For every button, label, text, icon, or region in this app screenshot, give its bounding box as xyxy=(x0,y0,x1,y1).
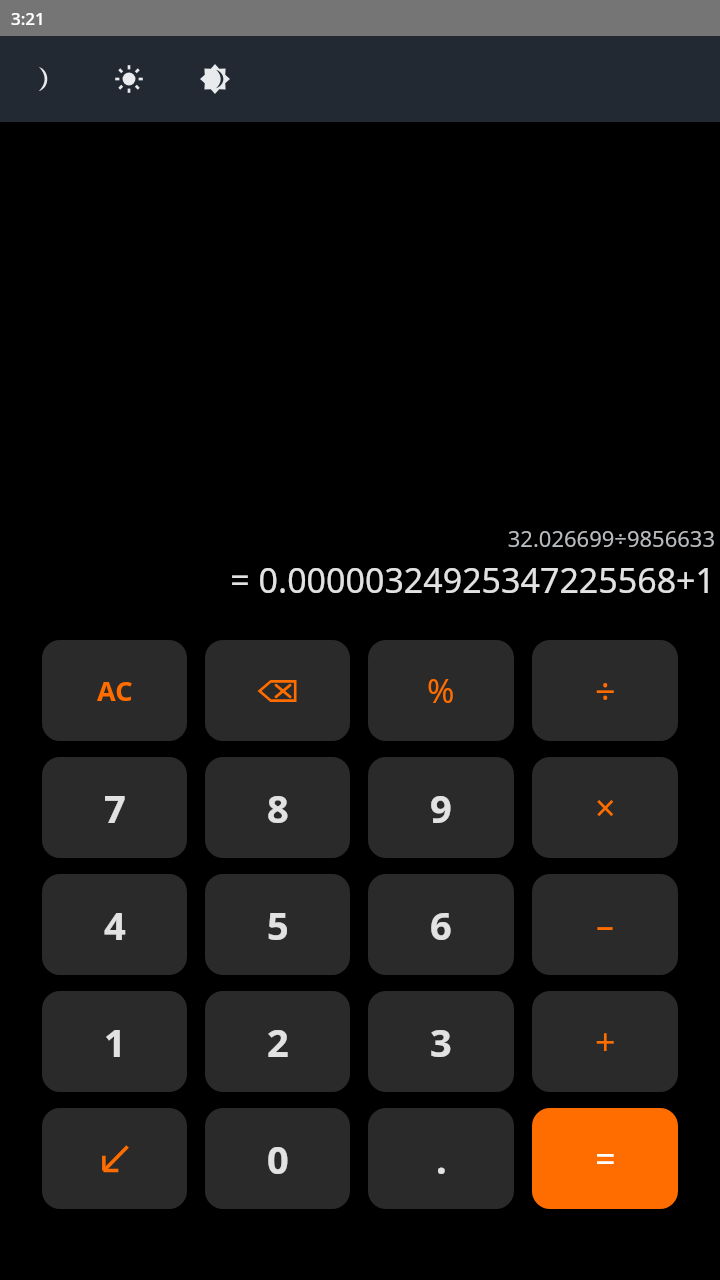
button[interactable]: Automatic theme xyxy=(187,51,243,107)
button[interactable]: 9 xyxy=(368,757,514,858)
staticText: 4 xyxy=(104,899,126,951)
button[interactable]: 7 xyxy=(42,757,187,858)
button[interactable]: 1 xyxy=(42,991,187,1092)
button[interactable]: . xyxy=(368,1108,514,1209)
staticText: × xyxy=(595,783,616,832)
staticText: 1 xyxy=(104,1016,126,1068)
staticText: 3:21 xyxy=(11,7,45,30)
staticText: 7 xyxy=(104,782,126,834)
button[interactable]: × xyxy=(532,757,678,858)
button[interactable]: Light theme xyxy=(101,51,157,107)
button[interactable]: ÷ xyxy=(532,640,678,741)
staticText: 5 xyxy=(267,899,289,951)
staticText: 32.026699÷9856633 xyxy=(507,523,715,553)
staticText: + xyxy=(595,1017,616,1066)
staticText: % xyxy=(427,668,455,713)
staticText: ÷ xyxy=(595,666,616,715)
button[interactable]: + xyxy=(532,991,678,1092)
button[interactable]: % xyxy=(368,640,514,741)
button[interactable]: 6 xyxy=(368,874,514,975)
staticText: AC xyxy=(97,672,133,709)
button[interactable]: 5 xyxy=(205,874,350,975)
staticText: 8 xyxy=(267,782,289,834)
staticText: = xyxy=(595,1134,616,1183)
button[interactable]: Insert previous result xyxy=(42,1108,187,1209)
button[interactable]: AC xyxy=(42,640,187,741)
staticText: 2 xyxy=(267,1016,289,1068)
button[interactable]: 0 xyxy=(205,1108,350,1209)
button[interactable]: 8 xyxy=(205,757,350,858)
staticText: 9 xyxy=(430,782,452,834)
button[interactable]: 4 xyxy=(42,874,187,975)
button[interactable]: Dark theme xyxy=(15,51,71,107)
staticText: 0 xyxy=(267,1133,289,1185)
button[interactable]: 2 xyxy=(205,991,350,1092)
button[interactable]: 3 xyxy=(368,991,514,1092)
staticText: – xyxy=(596,900,614,949)
staticText: = 0.00000324925347225568+1 xyxy=(230,557,715,603)
button[interactable]: Backspace xyxy=(205,640,350,741)
staticText: . xyxy=(436,1133,447,1185)
button[interactable]: – xyxy=(532,874,678,975)
staticText: 3 xyxy=(430,1016,452,1068)
staticText: 6 xyxy=(430,899,452,951)
button[interactable]: = xyxy=(532,1108,678,1209)
